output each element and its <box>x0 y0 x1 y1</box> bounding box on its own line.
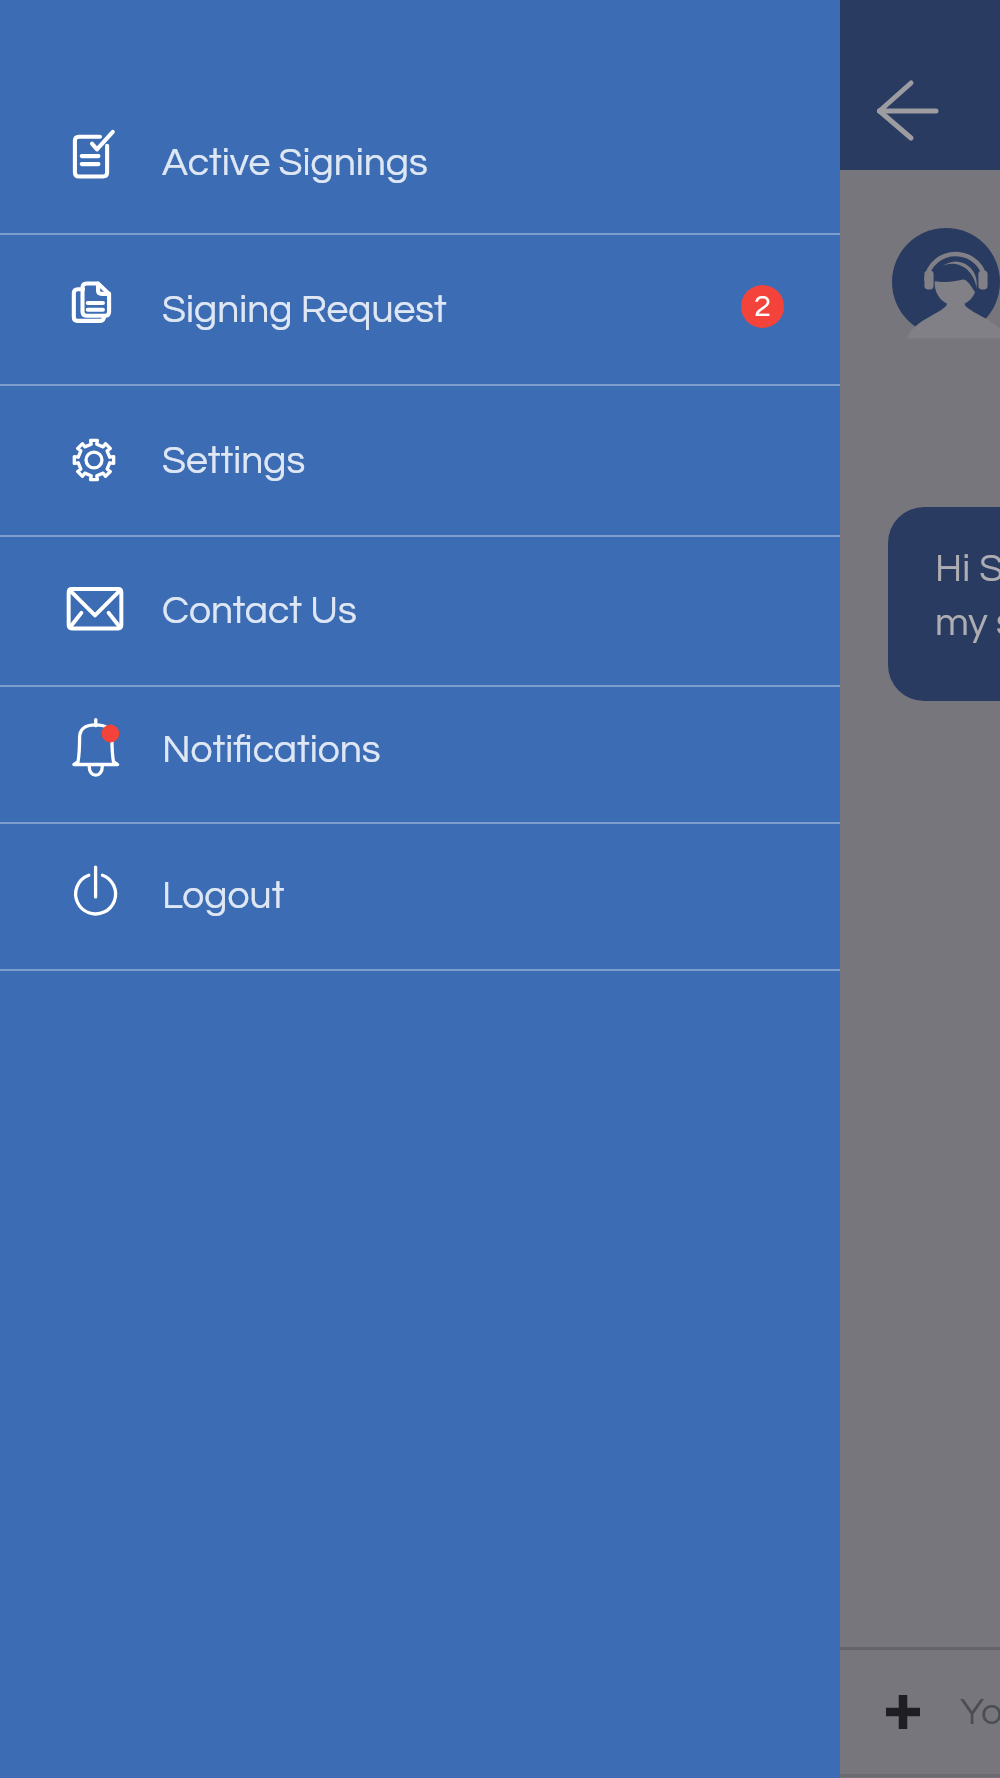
button[interactable]: Notifications <box>0 685 840 822</box>
button[interactable]: Logout <box>0 822 840 969</box>
staticText: Notifications <box>162 730 381 770</box>
button[interactable]: Signing Request <box>0 233 840 384</box>
staticText: Active Signings <box>162 143 428 183</box>
button[interactable]: Settings <box>0 384 840 535</box>
staticText: Contact Us <box>162 591 357 631</box>
button[interactable]: Add attachment <box>869 1678 937 1746</box>
staticText: 2 <box>754 291 771 322</box>
button[interactable]: Active Signings <box>0 89 840 233</box>
staticText: Settings <box>162 441 306 481</box>
staticText: Signing Request <box>162 290 447 330</box>
button[interactable]: Back <box>862 62 958 158</box>
staticText: Hi S <box>935 549 1000 589</box>
staticText: Yo <box>960 1693 1000 1732</box>
staticText: Logout <box>162 876 285 916</box>
staticText: my s <box>935 603 1000 643</box>
button[interactable]: Contact Us <box>0 535 840 685</box>
